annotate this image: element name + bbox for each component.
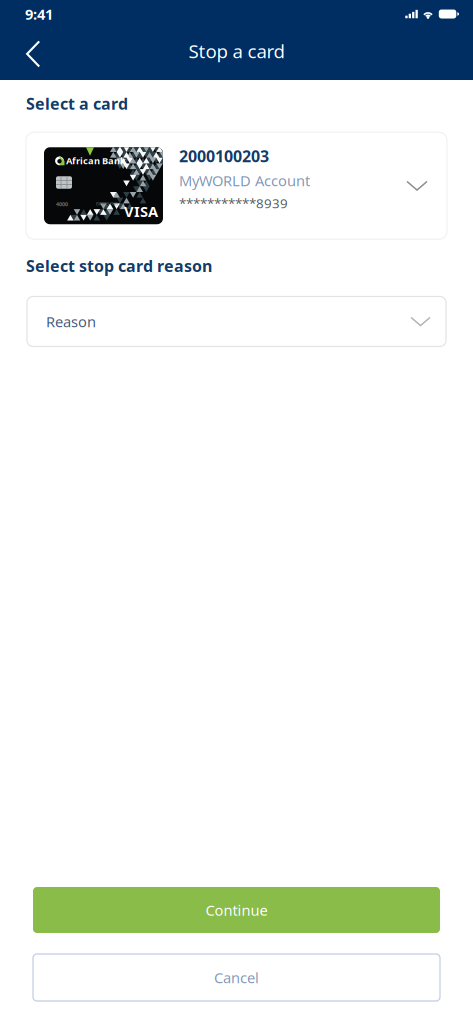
button[interactable]: Reason [0, 296, 473, 346]
staticText: Select stop card reason [26, 255, 212, 276]
staticText: 2000100203 [179, 145, 269, 167]
staticText: Continue [205, 900, 267, 920]
staticText: African Bank [66, 155, 126, 167]
staticText: Stop a card [188, 39, 284, 63]
staticText: ***********8939 [179, 194, 288, 212]
staticText: VISA [124, 201, 158, 221]
staticText: Cancel [214, 968, 259, 987]
staticText: Select a card [26, 93, 128, 114]
staticText: 9:41 [25, 4, 53, 24]
button[interactable]: Cancel [0, 954, 473, 1001]
staticText: Reason [46, 312, 96, 331]
button[interactable]: Back [0, 28, 54, 79]
button[interactable]: African Bank [0, 132, 473, 239]
button[interactable]: Continue [0, 887, 473, 933]
staticText: 4000 [56, 201, 68, 208]
staticText: MyWORLD Account [179, 171, 310, 190]
staticText: EXPIRES END [96, 201, 118, 206]
